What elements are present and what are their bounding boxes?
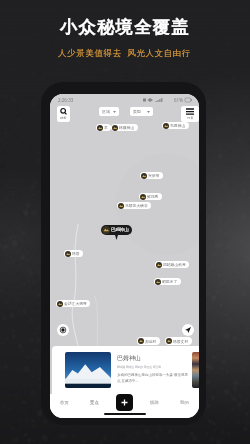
button[interactable]: 措普文村 bbox=[165, 337, 192, 345]
button[interactable]: 兴伊措 bbox=[140, 172, 163, 179]
button[interactable]: 景点 bbox=[79, 394, 109, 412]
button[interactable]: 昭觉冰了 bbox=[154, 278, 181, 285]
staticText: 人少景美值得去 风光人文自由行 bbox=[58, 47, 192, 59]
staticText: 首页 bbox=[60, 400, 69, 406]
button[interactable]: 线路 bbox=[139, 394, 169, 412]
staticText: 61% bbox=[174, 97, 183, 103]
staticText: 马帮龙大峡谷 bbox=[125, 203, 148, 208]
button[interactable]: 添加 bbox=[116, 394, 133, 411]
staticText: 类型 bbox=[133, 109, 141, 114]
staticText: 我的 bbox=[180, 400, 189, 406]
button[interactable]: 导航 bbox=[182, 324, 194, 336]
staticText: 扎嘎神山 bbox=[170, 123, 186, 128]
staticText: 搜索 bbox=[60, 116, 67, 120]
staticText: #拍摄 #神山 #徒步 #登山 #云海 bbox=[117, 365, 162, 369]
button[interactable]: 列表 bbox=[181, 106, 199, 122]
button[interactable]: 我的 bbox=[169, 394, 199, 412]
staticText: 乡城的巴姆神山是白山神背靠一头森·最佳观景点,在藏语中... bbox=[117, 372, 192, 383]
staticText: 线路 bbox=[150, 400, 159, 406]
button[interactable]: 类型 bbox=[130, 107, 153, 116]
staticText: 巴姆神山 bbox=[117, 354, 141, 362]
staticText: 兴伊措 bbox=[148, 173, 160, 178]
button[interactable]: 巴姆神山 bbox=[101, 225, 132, 235]
staticText: 邦达村 bbox=[145, 339, 157, 344]
button[interactable]: 四姑娘山科考 bbox=[155, 261, 189, 268]
staticText: 昭觉冰了 bbox=[162, 279, 178, 284]
staticText: 措普 bbox=[72, 251, 80, 256]
staticText: 巴姆神山 bbox=[111, 227, 129, 233]
button[interactable]: 扎嘎神山 bbox=[162, 122, 189, 129]
staticText: 2:26:33 bbox=[58, 97, 74, 103]
staticText: 格聂神山 bbox=[119, 125, 135, 130]
button[interactable]: 鲜花秀 bbox=[139, 193, 162, 200]
button[interactable]: 金沙江大拐弯 bbox=[56, 300, 90, 307]
staticText: 羊 bbox=[104, 125, 108, 130]
staticText: 措普文村 bbox=[173, 339, 189, 344]
button[interactable]: 格聂神山 bbox=[111, 124, 138, 131]
button[interactable]: 首页 bbox=[50, 394, 79, 412]
staticText: 四姑娘山科考 bbox=[163, 262, 186, 267]
staticText: 景点 bbox=[90, 400, 99, 406]
staticText: 金沙江大拐弯 bbox=[64, 301, 87, 306]
button[interactable]: 区域 bbox=[99, 107, 119, 116]
staticText: 小众秘境全覆盖 bbox=[60, 17, 190, 38]
button[interactable]: 邦达村 bbox=[137, 337, 160, 345]
button[interactable]: 定位 bbox=[57, 324, 69, 336]
staticText: 列表 bbox=[187, 116, 194, 120]
button[interactable]: 措普 bbox=[64, 250, 83, 257]
button[interactable] bbox=[192, 352, 199, 388]
button[interactable]: 巴姆神山 bbox=[65, 352, 192, 388]
button[interactable]: 马帮龙大峡谷 bbox=[117, 202, 151, 209]
staticText: 鲜花秀 bbox=[147, 194, 159, 199]
button[interactable]: 羊 bbox=[96, 124, 111, 131]
button[interactable]: 搜索 bbox=[57, 106, 70, 122]
staticText: 区域 bbox=[102, 109, 110, 114]
